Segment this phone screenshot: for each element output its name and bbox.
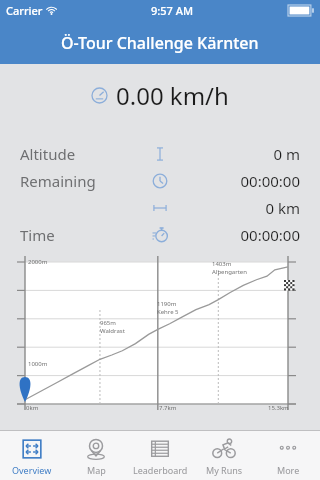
button[interactable]: My Runs: [192, 431, 256, 480]
button[interactable]: 0 km: [0, 194, 320, 221]
staticText: 0.00 km/h: [116, 79, 229, 112]
staticText: 15.3km: [268, 404, 289, 412]
staticText: 965m: [100, 319, 116, 327]
staticText: Ö-Tour Challenge Kärnten: [61, 32, 259, 54]
staticText: 9:57 AM: [151, 3, 194, 18]
staticText: 00:00:00: [240, 225, 300, 245]
staticText: Carrier: [6, 3, 43, 18]
staticText: Time: [20, 225, 55, 245]
staticText: 00:00:00: [240, 171, 300, 191]
staticText: 1000m: [28, 360, 48, 368]
button[interactable]: Leaderboard: [128, 431, 192, 480]
staticText: Leaderboard: [133, 464, 188, 476]
staticText: 2000m: [28, 258, 48, 266]
staticText: Remaining: [20, 171, 96, 191]
button[interactable]: Altitude: [0, 140, 320, 167]
staticText: My Runs: [206, 464, 243, 476]
button[interactable]: Overview: [0, 431, 64, 480]
staticText: 7.7km: [159, 404, 177, 412]
staticText: 1403m: [212, 260, 232, 268]
staticText: Map: [87, 464, 106, 476]
button[interactable]: Time: [0, 221, 320, 248]
staticText: 0 km: [265, 198, 300, 218]
staticText: 0 m: [273, 144, 300, 164]
button[interactable]: Map: [64, 431, 128, 480]
staticText: Kehre 5: [157, 308, 179, 316]
staticText: Overview: [12, 464, 52, 476]
staticText: Alpengarten: [212, 268, 247, 276]
staticText: Waldrast: [100, 327, 125, 335]
staticText: 0km: [26, 404, 39, 412]
staticText: Altitude: [20, 144, 76, 164]
button[interactable]: More: [256, 431, 320, 480]
button[interactable]: Remaining: [0, 167, 320, 194]
staticText: More: [277, 464, 300, 476]
staticText: 1190m: [157, 300, 177, 308]
